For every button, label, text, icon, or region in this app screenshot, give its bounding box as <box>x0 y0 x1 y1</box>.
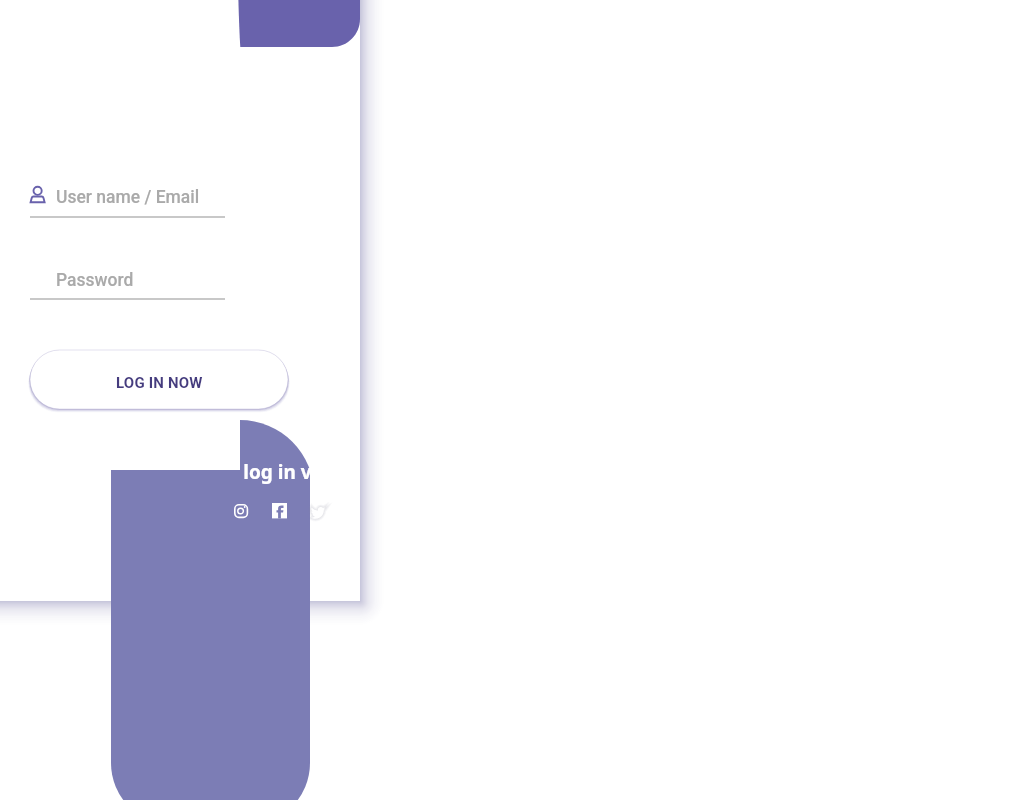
staticText: Password <box>56 270 134 291</box>
button[interactable]: Log in with Instagram <box>234 504 249 519</box>
staticText: User name / Email <box>56 187 200 208</box>
staticText: LOG IN NOW <box>116 374 203 392</box>
button[interactable]: Log in with Twitter <box>310 504 327 521</box>
button[interactable]: User name / Email <box>30 183 225 218</box>
staticText: log in via <box>243 459 329 485</box>
button[interactable]: LOG IN NOW <box>30 350 288 409</box>
button[interactable]: Password <box>30 265 225 300</box>
button[interactable]: Log in with Facebook <box>272 503 288 519</box>
